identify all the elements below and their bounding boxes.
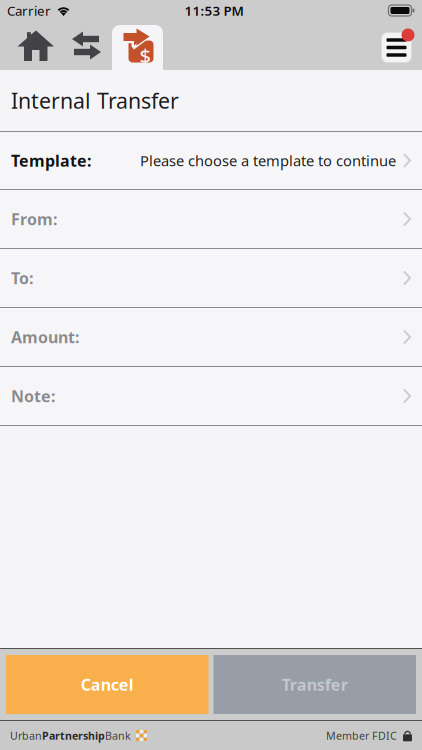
- button[interactable]: Home: [10, 21, 61, 70]
- button[interactable]: Note:: [0, 367, 422, 426]
- button[interactable]: Template:: [0, 132, 422, 190]
- button[interactable]: Amount:: [0, 308, 422, 367]
- staticText: Partnership: [42, 728, 105, 743]
- staticText: From:: [11, 208, 57, 230]
- button[interactable]: To:: [0, 249, 422, 308]
- button[interactable]: Menu: [380, 27, 416, 63]
- staticText: Note:: [11, 385, 55, 407]
- staticText: $: [139, 42, 150, 69]
- staticText: Please choose a template to continue: [140, 151, 396, 170]
- staticText: Transfer: [282, 674, 348, 695]
- button[interactable]: Transfer: [213, 655, 416, 714]
- staticText: Member FDIC: [326, 728, 397, 743]
- staticText: Amount:: [11, 326, 79, 348]
- button[interactable]: Internal Transfer: [112, 21, 163, 70]
- staticText: 11:53 PM: [184, 2, 243, 19]
- staticText: Carrier: [7, 2, 51, 19]
- button[interactable]: From:: [0, 190, 422, 249]
- staticText: Urban: [10, 728, 42, 743]
- button[interactable]: Cancel: [6, 655, 208, 714]
- staticText: Internal Transfer: [11, 86, 179, 115]
- button[interactable]: Transfers: [61, 21, 112, 70]
- staticText: Bank: [105, 728, 131, 743]
- staticText: To:: [11, 267, 33, 289]
- staticText: Cancel: [81, 674, 134, 695]
- staticText: Template:: [11, 150, 91, 171]
